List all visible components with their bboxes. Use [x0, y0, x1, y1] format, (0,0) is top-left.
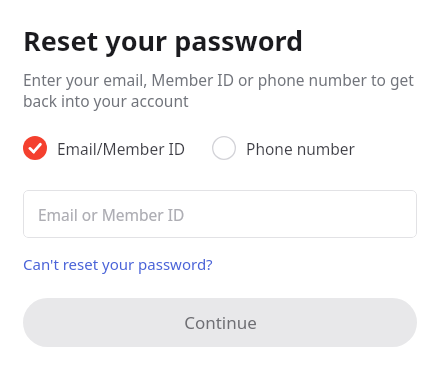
button[interactable]: Email or Member ID	[23, 190, 417, 238]
button[interactable]: Continue	[23, 298, 417, 347]
other: Email/Member ID selected	[23, 136, 47, 160]
button[interactable]: Can't reset your password?	[23, 252, 213, 276]
staticText: Reset your password	[23, 22, 304, 59]
other: Phone number	[212, 136, 236, 160]
button[interactable]: Email/Member ID selected	[23, 132, 186, 164]
staticText: Email/Member ID	[57, 138, 186, 159]
staticText: Email or Member ID	[38, 204, 185, 225]
staticText: Continue	[184, 311, 257, 334]
staticText: Can't reset your password?	[23, 254, 213, 274]
staticText: Enter your email, Member ID or phone num…	[23, 69, 417, 112]
staticText: Phone number	[246, 138, 356, 159]
button[interactable]: Phone number	[212, 132, 356, 164]
